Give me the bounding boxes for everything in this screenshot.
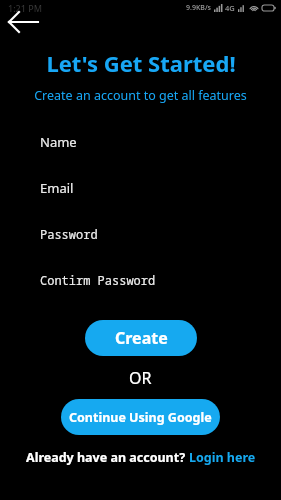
staticText: Password bbox=[40, 226, 98, 242]
staticText: Name bbox=[40, 133, 77, 151]
staticText: Create bbox=[115, 327, 168, 349]
button[interactable]: Already have an account? bbox=[26, 449, 256, 466]
button[interactable]: Email bbox=[0, 176, 281, 200]
button[interactable]: Password bbox=[0, 222, 281, 246]
staticText: Already have an account? bbox=[26, 449, 189, 466]
button[interactable]: Name bbox=[0, 130, 281, 154]
staticText: 4G bbox=[225, 3, 235, 13]
staticText: Contirm Password bbox=[40, 272, 156, 288]
button[interactable]: Contirm Password bbox=[0, 268, 281, 292]
staticText: 1:21 PM bbox=[8, 2, 42, 14]
button[interactable]: Create bbox=[85, 320, 197, 356]
button[interactable]: Back bbox=[2, 6, 44, 38]
staticText: Create an account to get all features bbox=[34, 87, 247, 104]
staticText: Email bbox=[40, 179, 74, 197]
staticText: 9.9KB/s bbox=[186, 3, 212, 13]
button[interactable]: Continue Using Google bbox=[61, 399, 220, 435]
staticText: Login here bbox=[189, 449, 256, 466]
staticText: Let's Get Started! bbox=[46, 48, 236, 78]
staticText: Continue Using Google bbox=[69, 409, 212, 426]
staticText: OR bbox=[129, 367, 152, 389]
